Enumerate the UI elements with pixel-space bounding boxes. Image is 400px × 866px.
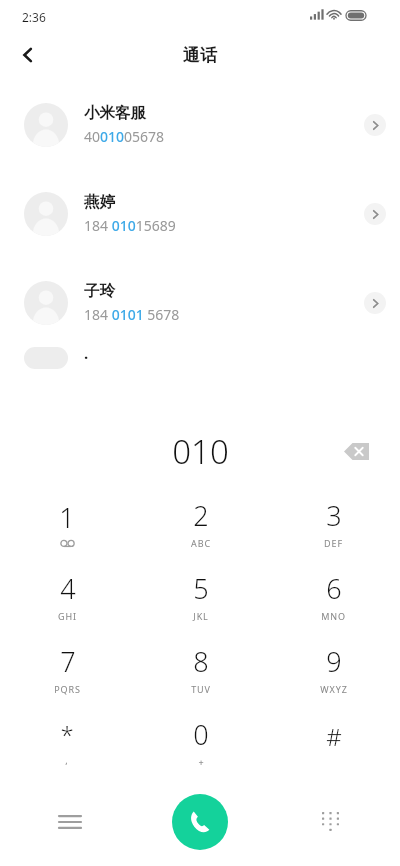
staticText: TUV [191, 683, 211, 695]
staticText: 6 [326, 570, 342, 607]
staticText: 子玲 [84, 281, 115, 301]
button[interactable]: 小米客服 [0, 80, 400, 169]
button[interactable]: 燕婷 [0, 169, 400, 258]
button[interactable]: Back [6, 33, 50, 77]
button[interactable]: Dialpad [308, 800, 352, 844]
staticText: DEF [324, 537, 343, 549]
staticText: 1 [59, 499, 75, 536]
staticText: · [84, 347, 89, 367]
button[interactable]: 6 [267, 559, 400, 632]
button[interactable]: Details [355, 283, 395, 323]
button[interactable]: Call [172, 794, 228, 850]
staticText: 4001005678 [84, 127, 165, 146]
staticText: 8 [193, 643, 209, 680]
staticText: 184 01015689 [84, 216, 176, 235]
staticText: # [326, 720, 342, 753]
staticText: 4 [60, 570, 76, 607]
button[interactable]: 2 [134, 486, 267, 559]
button[interactable]: 5 [134, 559, 267, 632]
staticText: ABC [191, 537, 211, 549]
staticText: PQRS [54, 683, 81, 695]
staticText: 184 0101 5678 [84, 305, 180, 324]
button[interactable]: · [0, 347, 400, 369]
staticText: 5 [193, 570, 209, 607]
staticText: 通话 [183, 45, 217, 66]
button[interactable]: Details [355, 194, 395, 234]
staticText: 3 [326, 497, 342, 534]
staticText: * [60, 718, 74, 751]
button[interactable]: 子玲 [0, 258, 400, 347]
staticText: 9 [326, 643, 342, 680]
staticText: 2:36 [22, 9, 46, 25]
staticText: 燕婷 [84, 192, 115, 212]
button[interactable]: # [267, 705, 400, 778]
staticText: WXYZ [320, 683, 348, 695]
staticText: 0 [193, 716, 209, 753]
button[interactable]: 4 [0, 559, 134, 632]
staticText: JKL [193, 610, 209, 622]
button[interactable]: Menu [48, 800, 92, 844]
staticText: 2 [193, 497, 209, 534]
button[interactable]: * [0, 705, 134, 778]
staticText: 小米客服 [84, 103, 146, 123]
staticText: MNO [321, 610, 346, 622]
button[interactable]: 7 [0, 632, 134, 705]
staticText: 010 [172, 429, 229, 474]
staticText: , [65, 754, 69, 766]
button[interactable]: 9 [267, 632, 400, 705]
staticText: 7 [60, 643, 76, 680]
button[interactable]: 3 [267, 486, 400, 559]
button[interactable]: 0 [134, 705, 267, 778]
staticText: GHI [58, 610, 77, 622]
button[interactable]: Details [355, 105, 395, 145]
staticText: + [198, 756, 205, 768]
button[interactable]: 1 [0, 486, 134, 559]
button[interactable]: 8 [134, 632, 267, 705]
button[interactable]: Backspace [334, 429, 378, 473]
